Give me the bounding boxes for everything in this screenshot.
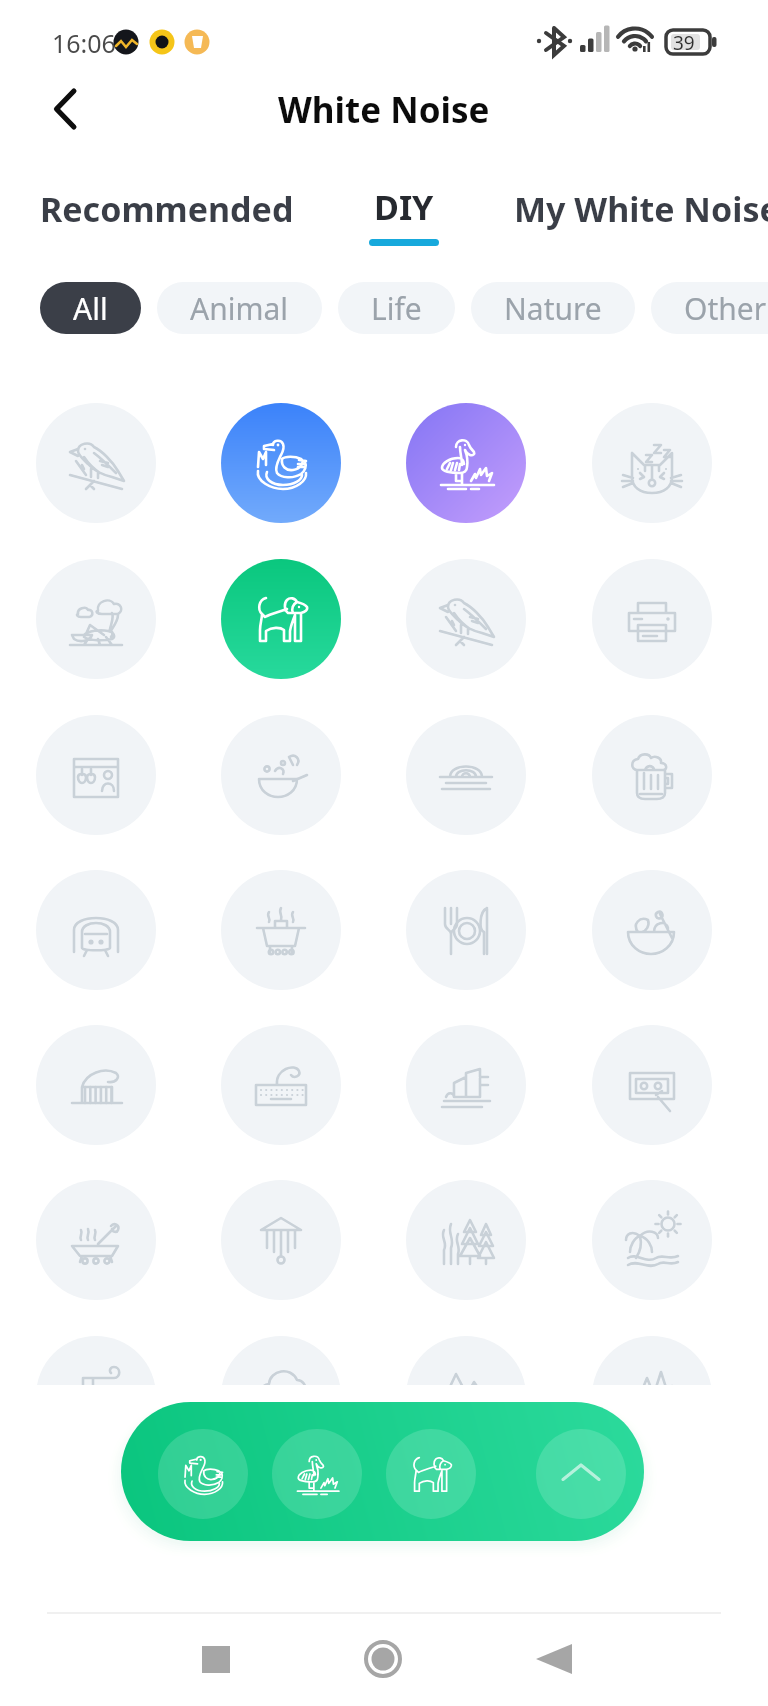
button[interactable]: Sound 3 — [592, 403, 712, 523]
button[interactable]: Sound 5 — [221, 559, 341, 679]
button[interactable]: Sound 21 — [221, 1180, 341, 1300]
button[interactable]: My White Noise — [500, 180, 768, 256]
button[interactable]: Sound 10 — [406, 715, 526, 835]
button[interactable]: Sound 26 — [406, 1336, 526, 1385]
button[interactable]: Sound 23 — [592, 1180, 712, 1300]
button[interactable]: All — [40, 282, 141, 334]
button[interactable]: Playing sound 2 — [272, 1429, 362, 1519]
button[interactable]: Recommended — [26, 180, 308, 256]
button[interactable]: Sound 7 — [592, 559, 712, 679]
button[interactable]: Sound 20 — [36, 1180, 156, 1300]
button[interactable]: Sound 6 — [406, 559, 526, 679]
button[interactable]: Sound 17 — [221, 1025, 341, 1145]
button[interactable]: Playing sound 3 — [386, 1429, 476, 1519]
staticText: Nature — [504, 288, 602, 329]
button[interactable]: Sound 12 — [36, 870, 156, 990]
button[interactable]: Sound 25 — [221, 1336, 341, 1385]
button[interactable]: Back — [34, 79, 94, 139]
button[interactable]: Sound 22 — [406, 1180, 526, 1300]
button[interactable]: Sound 27 — [592, 1336, 712, 1385]
staticText: All — [73, 288, 108, 329]
button[interactable]: Sound 15 — [592, 870, 712, 990]
button[interactable]: DIY — [354, 180, 454, 256]
staticText: Animal — [190, 288, 289, 329]
button[interactable]: Animal — [157, 282, 322, 334]
button[interactable]: Sound 24 — [36, 1336, 156, 1385]
button[interactable]: Sound 1 — [221, 403, 341, 523]
button[interactable]: Other — [651, 282, 768, 334]
button[interactable]: Sound 13 — [221, 870, 341, 990]
staticText: My White Noise — [514, 186, 768, 232]
button[interactable]: Sound 18 — [406, 1025, 526, 1145]
button[interactable]: Life — [338, 282, 455, 334]
button[interactable]: Sound 11 — [592, 715, 712, 835]
button[interactable]: Sound 0 — [36, 403, 156, 523]
staticText: Recommended — [40, 186, 294, 232]
button[interactable]: Playing sound 1 — [158, 1429, 248, 1519]
staticText: DIY — [374, 184, 434, 230]
button[interactable]: Expand — [536, 1429, 626, 1519]
staticText: Other — [684, 288, 767, 329]
button[interactable]: Sound 2 — [406, 403, 526, 523]
staticText: 39 — [673, 30, 695, 56]
button[interactable]: Sound 9 — [221, 715, 341, 835]
button[interactable]: Sound 14 — [406, 870, 526, 990]
staticText: Life — [371, 288, 422, 329]
button[interactable]: Sound 16 — [36, 1025, 156, 1145]
button[interactable]: Sound 19 — [592, 1025, 712, 1145]
button[interactable]: Sound 8 — [36, 715, 156, 835]
staticText: 16:06 — [52, 26, 116, 60]
staticText: White Noise — [278, 86, 490, 134]
button[interactable]: Sound 4 — [36, 559, 156, 679]
button[interactable]: Nature — [471, 282, 635, 334]
